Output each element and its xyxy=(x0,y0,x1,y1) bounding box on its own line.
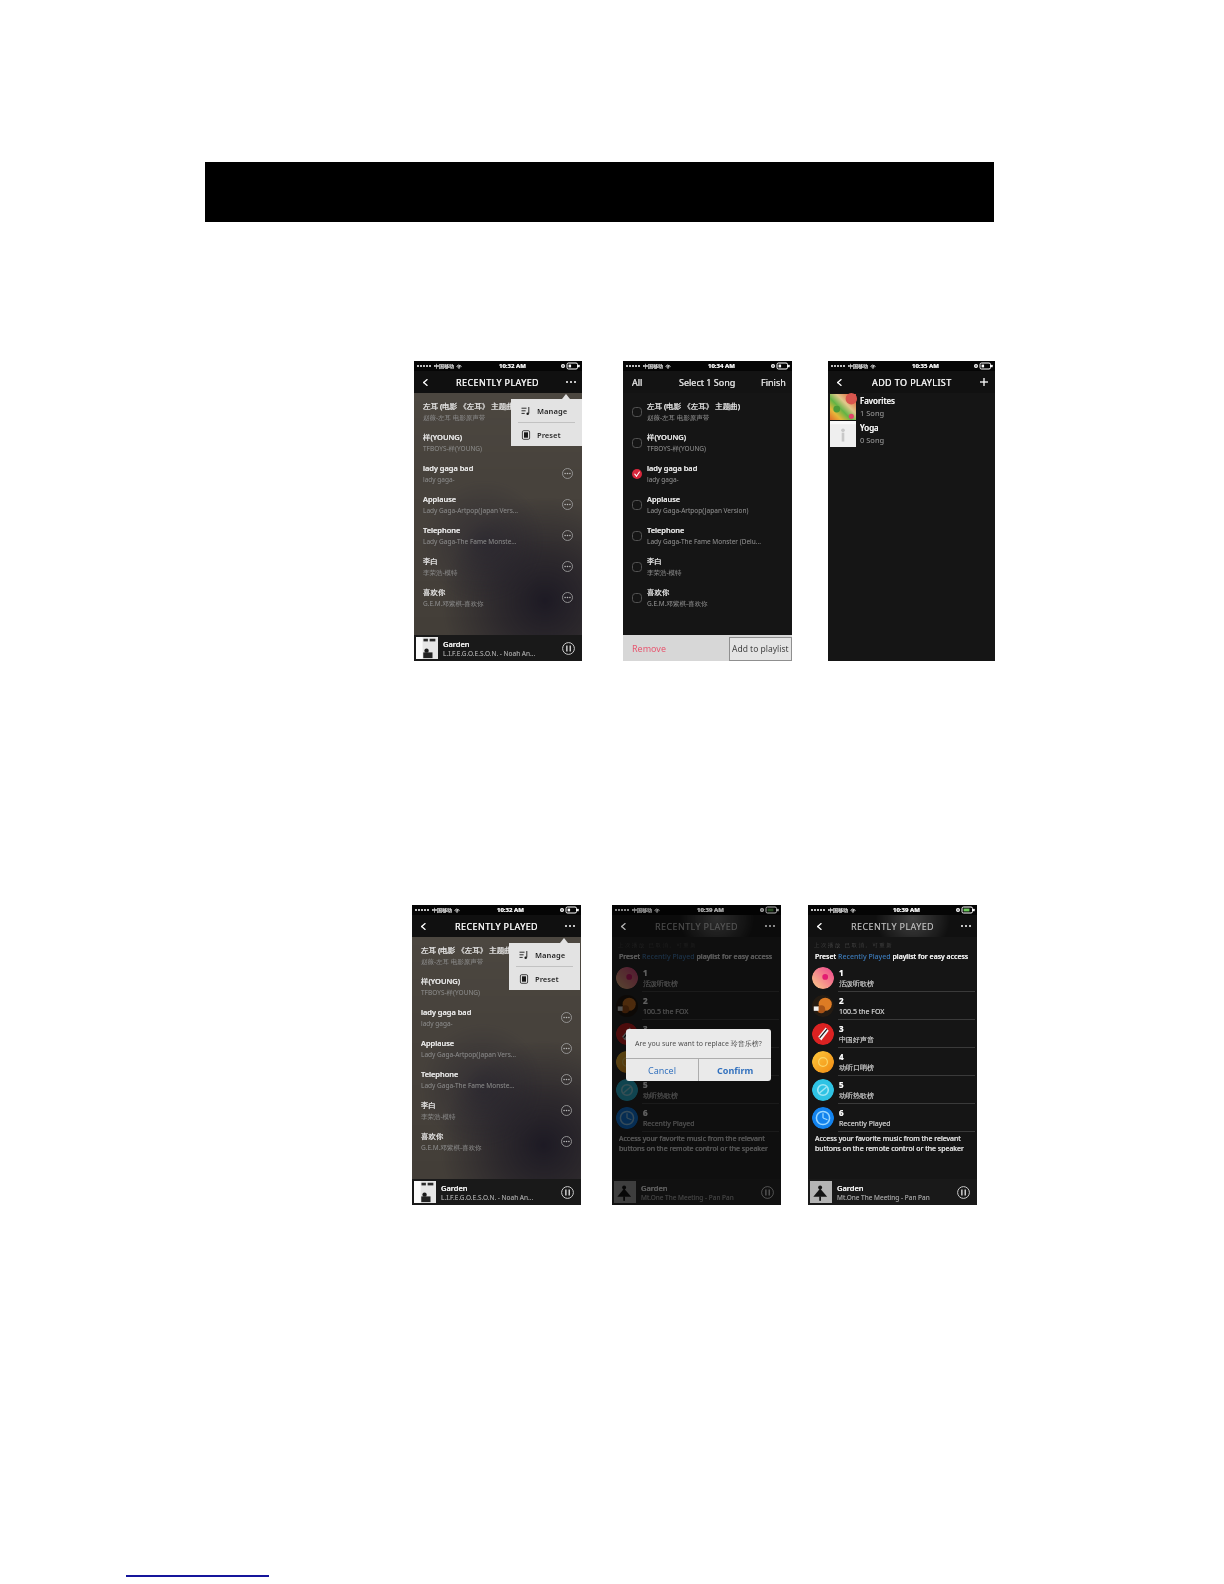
staticText: Applause xyxy=(421,1038,455,1048)
button[interactable]: Back xyxy=(412,915,432,937)
button[interactable]: Song options xyxy=(561,591,574,604)
button[interactable]: Cancel xyxy=(626,1059,698,1081)
button[interactable]: 6 xyxy=(612,1104,781,1131)
staticText: RECENTLY PLAYED xyxy=(655,920,739,932)
button[interactable]: Garden xyxy=(412,1179,581,1205)
button[interactable]: lady gaga bad xyxy=(623,458,792,489)
button[interactable]: 左耳 (电影 《左耳》 主题曲) xyxy=(623,396,792,427)
button[interactable]: 喜欢你 xyxy=(412,1126,581,1157)
button[interactable]: 1 xyxy=(612,964,781,991)
button[interactable]: Applause xyxy=(623,489,792,520)
button[interactable]: lady gaga bad xyxy=(414,458,582,489)
button[interactable]: Garden xyxy=(612,1179,781,1205)
staticText: lady gaga- xyxy=(423,475,455,484)
button[interactable]: Garden xyxy=(808,1179,977,1205)
staticText: 3 xyxy=(643,1023,648,1034)
button[interactable]: Song options xyxy=(561,529,574,542)
button[interactable]: 左耳 (电影 《左耳》 主题曲) xyxy=(412,940,581,971)
button[interactable]: Add to playlist xyxy=(729,637,792,661)
staticText: Preset Recently Played playlist for easy… xyxy=(815,952,969,962)
button[interactable]: 左耳 (电影 《左耳》 主题曲) xyxy=(414,396,582,427)
button[interactable]: Telephone xyxy=(414,520,582,551)
button[interactable]: Manage xyxy=(509,943,580,966)
button[interactable]: 2 xyxy=(612,992,781,1019)
button[interactable]: More options xyxy=(955,915,977,937)
button[interactable]: 喜欢你 xyxy=(414,582,582,613)
staticText: RECENTLY PLAYED xyxy=(455,920,539,932)
button[interactable]: Song options xyxy=(560,1042,573,1055)
button[interactable]: All xyxy=(623,371,652,393)
button[interactable]: Garden xyxy=(414,635,582,661)
staticText: 100.5 the FOX xyxy=(643,1007,689,1017)
button[interactable]: 5 xyxy=(612,1076,781,1103)
button[interactable]: 6 xyxy=(808,1104,977,1131)
staticText: 李荣浩-模特 xyxy=(421,1112,456,1121)
button[interactable]: Add xyxy=(973,371,995,393)
staticText: 喜欢你 xyxy=(421,1132,444,1141)
staticText: 10:39 AM xyxy=(893,906,920,914)
staticText: Lady Gaga-Artpop(Japan Vers... xyxy=(421,1050,517,1059)
button[interactable]: Back xyxy=(414,371,434,393)
button[interactable]: Pause xyxy=(760,1185,775,1200)
staticText: Garden xyxy=(641,1183,668,1193)
button[interactable]: Manage xyxy=(511,399,582,422)
button[interactable]: Finish xyxy=(755,371,792,393)
button[interactable]: Back xyxy=(612,915,632,937)
button[interactable]: More options xyxy=(559,915,581,937)
button[interactable]: 4 xyxy=(612,1048,781,1075)
button[interactable]: 4 xyxy=(808,1048,977,1075)
button[interactable]: Song options xyxy=(561,467,574,480)
staticText: Add to playlist xyxy=(732,643,789,655)
staticText: Mt.One The Meeting - Pan Pan xyxy=(837,1193,930,1202)
staticText: lady gaga- xyxy=(421,1019,453,1028)
staticText: 2 xyxy=(643,995,648,1006)
button[interactable]: Song options xyxy=(560,1104,573,1117)
button[interactable]: Song options xyxy=(560,1073,573,1086)
button[interactable]: Song options xyxy=(560,1135,573,1148)
button[interactable]: 样(YOUNG) xyxy=(623,427,792,458)
button[interactable]: Yoga xyxy=(828,420,995,447)
button[interactable]: Back xyxy=(808,915,828,937)
button[interactable]: Back xyxy=(828,371,848,393)
button[interactable]: 李白 xyxy=(414,551,582,582)
staticText: 中国移动 xyxy=(848,363,868,369)
button[interactable]: Applause xyxy=(414,489,582,520)
button[interactable]: 3 xyxy=(808,1020,977,1047)
button[interactable]: Applause xyxy=(412,1033,581,1064)
staticText: Preset Recently Played playlist for easy… xyxy=(619,952,773,962)
button[interactable]: Preset xyxy=(511,423,582,446)
button[interactable]: Song options xyxy=(561,560,574,573)
staticText: Garden xyxy=(837,1183,864,1193)
button[interactable]: Pause xyxy=(956,1185,971,1200)
button[interactable]: 样(YOUNG) xyxy=(412,971,581,1002)
button[interactable]: Pause xyxy=(561,641,576,656)
button[interactable]: Telephone xyxy=(623,520,792,551)
button[interactable]: Pause xyxy=(560,1185,575,1200)
button[interactable]: 2 xyxy=(808,992,977,1019)
button[interactable]: Telephone xyxy=(412,1064,581,1095)
button[interactable]: 5 xyxy=(808,1076,977,1103)
button[interactable]: 李白 xyxy=(412,1095,581,1126)
staticText: Garden xyxy=(441,1183,468,1193)
button[interactable]: Confirm xyxy=(699,1059,771,1081)
button[interactable]: Song options xyxy=(561,498,574,511)
button[interactable]: lady gaga bad xyxy=(412,1002,581,1033)
staticText: L.I.F.E.G.O.E.S.O.N. - Noah An... xyxy=(443,649,536,658)
button[interactable]: More options xyxy=(759,915,781,937)
button[interactable]: 李白 xyxy=(623,551,792,582)
staticText: Favorites xyxy=(860,395,895,406)
button[interactable]: Remove xyxy=(623,635,729,661)
staticText: RECENTLY PLAYED xyxy=(456,376,540,388)
button[interactable]: 1 xyxy=(808,964,977,991)
button[interactable]: 喜欢你 xyxy=(623,582,792,613)
button[interactable]: 3 xyxy=(612,1020,781,1047)
staticText: 李白 xyxy=(647,557,662,566)
button[interactable]: Song options xyxy=(560,1011,573,1024)
button[interactable]: 样(YOUNG) xyxy=(414,427,582,458)
button[interactable]: Favorites xyxy=(828,393,995,420)
staticText: Applause xyxy=(647,494,681,504)
button[interactable]: Preset xyxy=(509,967,580,990)
staticText: 中国移动 xyxy=(432,907,452,913)
button[interactable]: More options xyxy=(560,371,582,393)
